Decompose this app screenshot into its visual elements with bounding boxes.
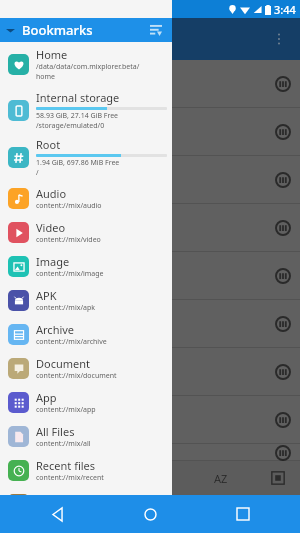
button[interactable]: Internal storage [0,87,172,134]
staticText: App [36,390,57,405]
staticText: Internal storage [36,90,120,105]
button[interactable]: AZ [206,463,236,493]
staticText: APK [36,288,57,303]
button[interactable]: Video [0,215,172,249]
staticText: content://mix/trash [36,507,100,517]
staticText: 3:44 [274,2,296,17]
staticText: content://mix/archive [36,337,107,347]
button[interactable]: More options [264,24,294,54]
button[interactable]: Recent apps [226,497,260,531]
staticText: Recent files [36,458,96,473]
staticText: Root [36,137,61,152]
staticText: All Files [36,424,75,439]
button[interactable]: Back [40,497,74,531]
staticText: content://mix/app [36,405,96,415]
staticText: Bookmarks [22,21,93,39]
button[interactable]: Home [0,42,172,87]
staticText: content://mix/video [36,235,101,245]
staticText: Image [36,254,70,269]
staticText: Archive [36,322,75,337]
button[interactable]: Home [133,497,167,531]
button[interactable]: Bookmarks [0,18,172,42]
staticText: home [36,72,56,82]
staticText: content://mix/document [36,371,117,381]
staticText: content://mix/apk [36,303,95,313]
staticText: /data/data/com.mixplorer.beta/ [36,62,140,72]
button[interactable]: Root [0,134,172,181]
button[interactable]: Recent files [0,453,172,487]
staticText: 58.93 GiB, 27.14 GiB Free [36,111,119,121]
staticText: content://mix/image [36,269,104,279]
button[interactable]: Refresh [150,464,178,492]
button[interactable]: Archive [0,317,172,351]
staticText: Home [36,47,68,62]
button[interactable]: Image [0,249,172,283]
button[interactable]: Sort bookmarks [146,20,166,40]
staticText: content://mix/all [36,439,91,449]
staticText: Video [36,220,66,235]
button[interactable]: All Files [0,419,172,453]
staticText: content://mix/recent [36,473,104,483]
button[interactable]: Audio [0,181,172,215]
staticText: AZ [214,471,228,486]
staticText: Audio [36,186,67,201]
button[interactable]: Document [0,351,172,385]
staticText: Document [36,356,91,371]
button[interactable]: APK [0,283,172,317]
button[interactable]: Select all [264,464,292,492]
staticText: / [36,168,39,178]
staticText: f6f94f966fd [2,125,62,140]
staticText: content://mix/audio [36,201,102,211]
staticText: Recycle bin [36,492,94,507]
button[interactable]: App [0,385,172,419]
staticText: 1.94 GiB, 697.86 MiB Free [36,158,120,168]
button[interactable]: Recycle bin [0,487,172,521]
staticText: /storage/emulated/0 [36,121,105,131]
